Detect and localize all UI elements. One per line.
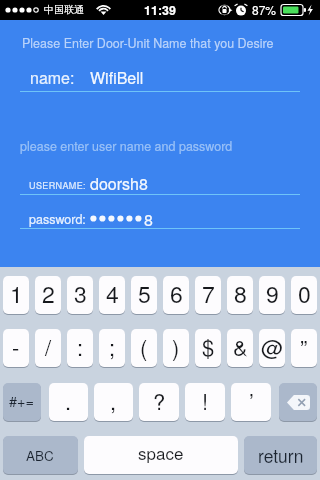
staticText: :: [77, 331, 84, 363]
staticText: 11:39: [0, 1, 320, 19]
staticText: 3: [74, 277, 87, 310]
staticText: @: [261, 331, 284, 363]
staticText: WifiBell: [90, 66, 144, 89]
button[interactable]: !: [185, 383, 225, 421]
staticText: return: [258, 443, 304, 468]
staticText: 87%: [252, 1, 277, 18]
button[interactable]: #+=: [3, 383, 41, 421]
button[interactable]: $: [195, 329, 221, 367]
staticText: $: [202, 331, 215, 363]
button[interactable]: /: [35, 329, 61, 367]
staticText: 8: [234, 277, 247, 310]
staticText: -: [12, 331, 20, 363]
button[interactable]: ABC: [3, 436, 78, 474]
staticText: 0: [298, 277, 311, 310]
staticText: ?: [153, 385, 166, 417]
button[interactable]: &: [227, 329, 253, 367]
staticText: ABC: [26, 446, 54, 465]
staticText: please enter user name and password: [20, 137, 233, 155]
button[interactable]: 2: [35, 276, 61, 314]
staticText: 9: [266, 277, 279, 310]
staticText: 1: [10, 277, 23, 310]
button[interactable]: ’: [231, 383, 271, 421]
staticText: 7: [202, 277, 215, 310]
button[interactable]: 8: [227, 276, 253, 314]
staticText: Please Enter Door-Unit Name that you Des…: [22, 34, 274, 52]
button[interactable]: -: [3, 329, 29, 367]
button[interactable]: ): [163, 329, 189, 367]
staticText: 4: [106, 277, 119, 310]
staticText: name:: [30, 66, 75, 89]
staticText: (: [140, 331, 148, 363]
button[interactable]: ”: [291, 329, 317, 367]
button[interactable]: 1: [3, 276, 29, 314]
button[interactable]: .: [49, 383, 88, 421]
staticText: password:: [29, 210, 86, 228]
staticText: space: [138, 440, 184, 464]
button[interactable]: 6: [163, 276, 189, 314]
staticText: !: [202, 385, 209, 417]
staticText: ”: [300, 331, 308, 363]
button[interactable]: space: [84, 436, 238, 474]
staticText: 6: [170, 277, 183, 310]
staticText: USERNAME:: [29, 179, 87, 192]
button[interactable]: 9: [259, 276, 285, 314]
staticText: #+=: [9, 390, 34, 411]
staticText: /: [45, 331, 52, 363]
button[interactable]: ,: [94, 383, 133, 421]
button[interactable]: return: [244, 436, 317, 474]
staticText: 中国联通: [44, 3, 84, 16]
button[interactable]: ;: [99, 329, 125, 367]
staticText: doorsh8: [90, 172, 148, 195]
button[interactable]: @: [259, 329, 285, 367]
button[interactable]: ?: [139, 383, 179, 421]
staticText: ;: [109, 331, 116, 363]
button[interactable]: (: [131, 329, 157, 367]
button[interactable]: 7: [195, 276, 221, 314]
button[interactable]: 4: [99, 276, 125, 314]
button[interactable]: 5: [131, 276, 157, 314]
staticText: ,: [110, 385, 117, 417]
button[interactable]: 3: [67, 276, 93, 314]
staticText: .: [65, 385, 72, 417]
button[interactable]: Backspace: [279, 383, 317, 421]
staticText: 5: [138, 277, 151, 310]
staticText: 2: [42, 277, 55, 310]
staticText: ): [172, 331, 180, 363]
staticText: 8: [144, 208, 153, 228]
button[interactable]: 0: [291, 276, 317, 314]
staticText: ’: [249, 385, 254, 417]
staticText: &: [233, 331, 248, 363]
button[interactable]: :: [67, 329, 93, 367]
